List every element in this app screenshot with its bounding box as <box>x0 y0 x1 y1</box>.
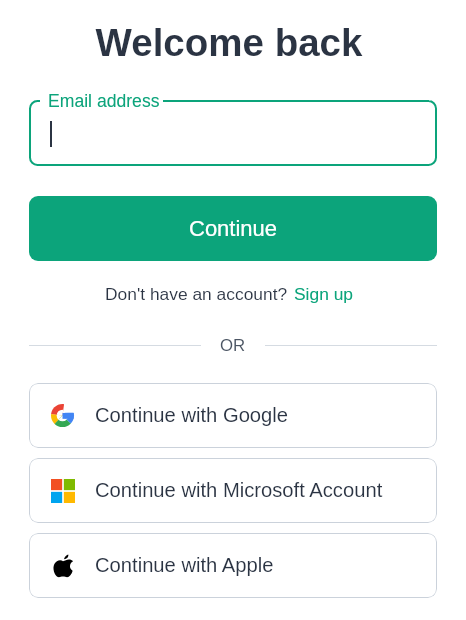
button[interactable]: Continue with Apple <box>29 533 437 598</box>
staticText: Continue with Microsoft Account <box>95 479 383 502</box>
staticText: OR <box>220 336 246 355</box>
button[interactable]: Continue <box>29 196 437 261</box>
button[interactable]: Continue with Google <box>29 383 437 448</box>
staticText: Don't have an account? <box>105 284 288 303</box>
staticText: Email address <box>48 91 160 111</box>
staticText: Continue <box>189 216 278 241</box>
button[interactable]: Continue with Microsoft Account <box>29 458 437 523</box>
staticText: Continue with Apple <box>95 554 274 577</box>
staticText: Continue with Google <box>95 404 289 427</box>
staticText: Sign up <box>294 284 353 303</box>
staticText: Welcome back <box>29 21 429 64</box>
button[interactable]: Sign up <box>294 284 353 303</box>
